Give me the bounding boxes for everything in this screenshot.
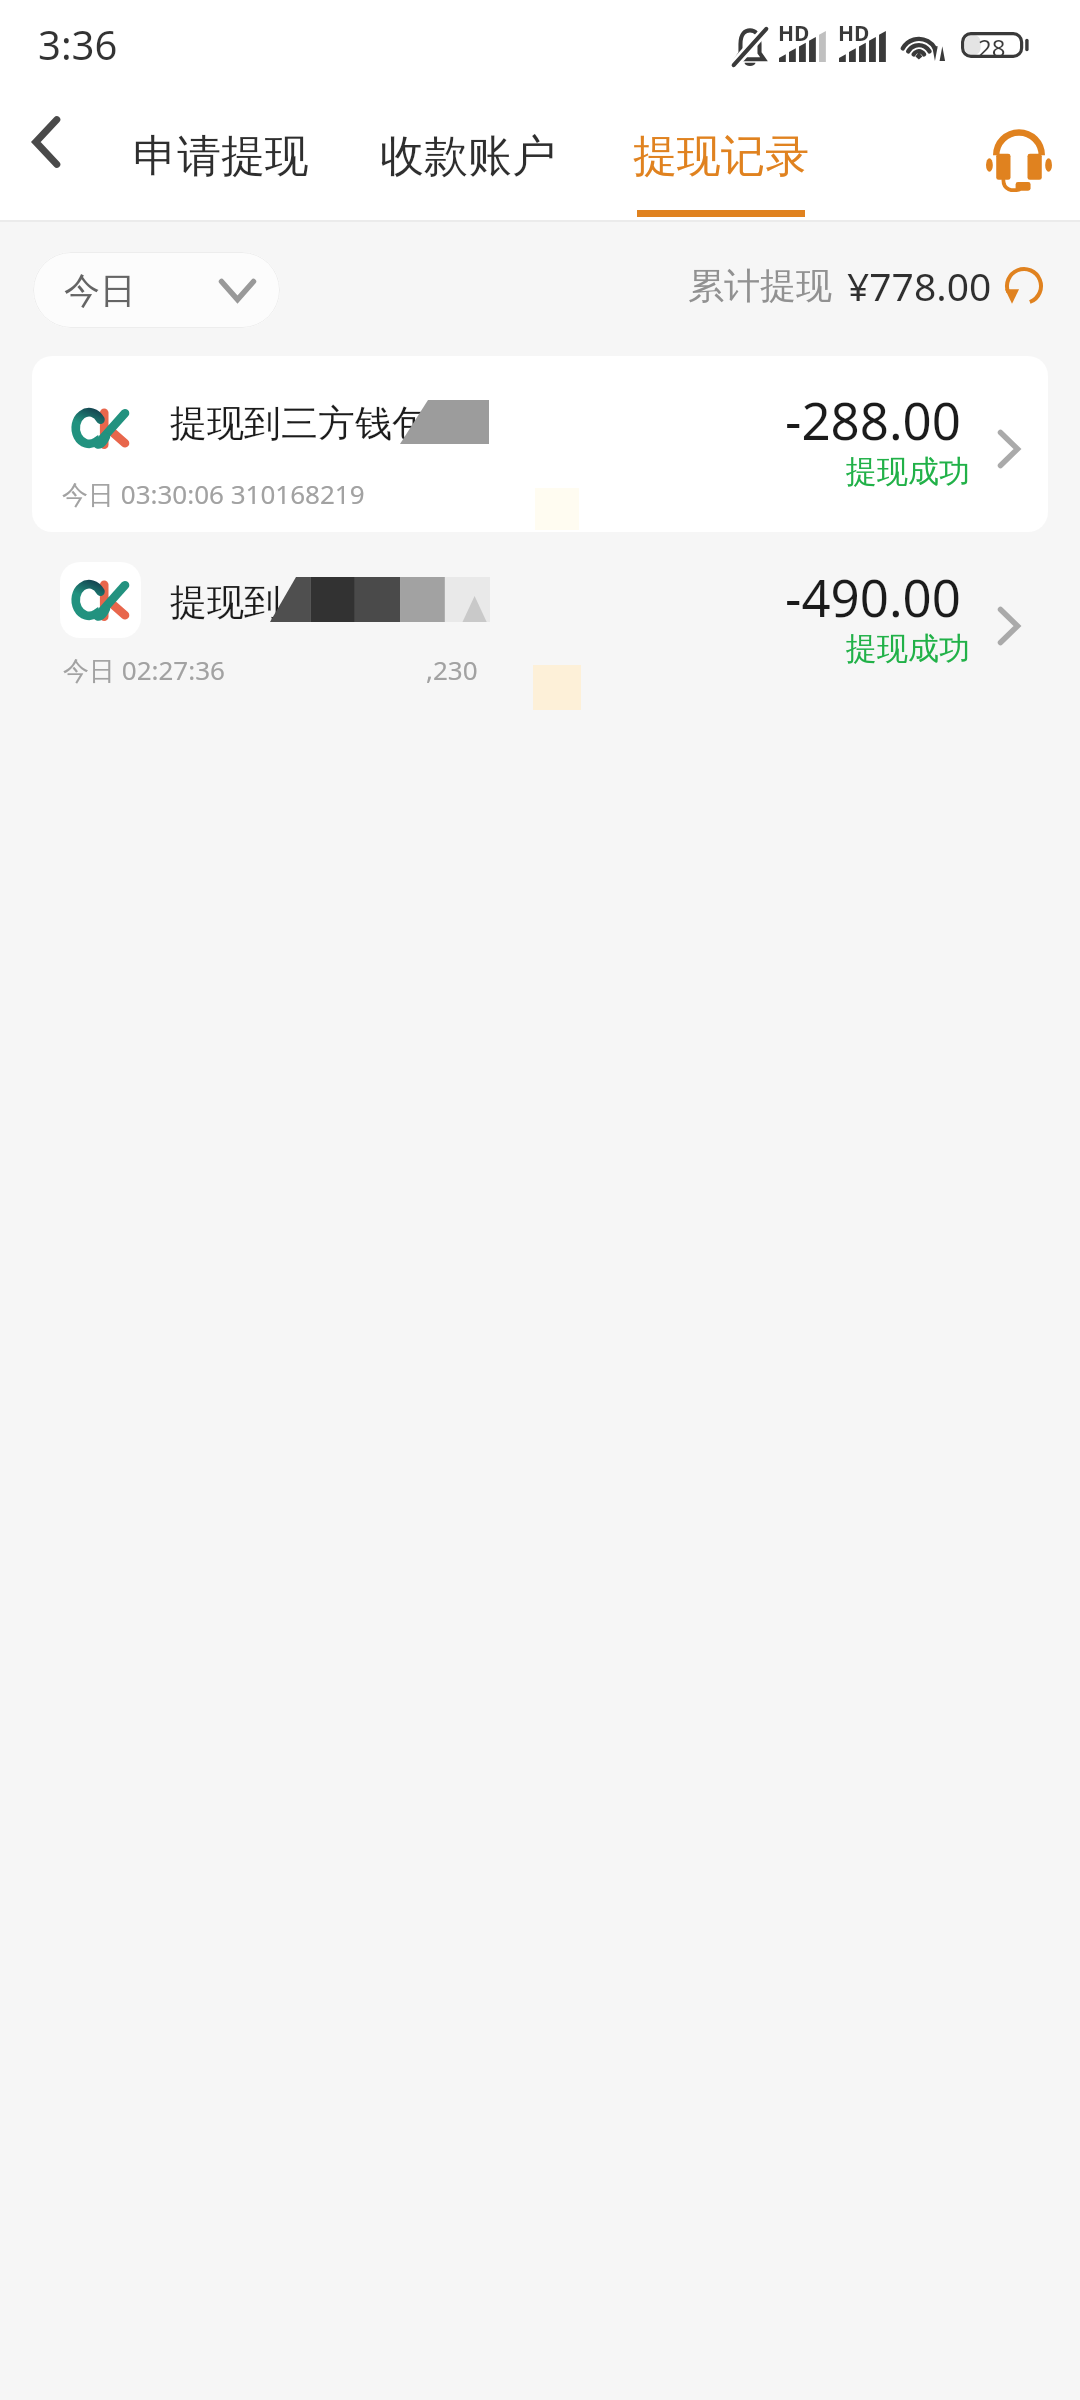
staticText: 提现记录 xyxy=(633,129,809,184)
button[interactable]: 申请提现 xyxy=(133,108,309,220)
button[interactable]: 提现到 xyxy=(32,548,1048,722)
button[interactable]: 提现到三方钱包 xyxy=(32,356,1048,532)
staticText: 申请提现 xyxy=(133,129,309,184)
staticText: 提现到 xyxy=(170,579,281,626)
staticText: HD xyxy=(778,19,810,48)
staticText: -490.00 xyxy=(785,562,961,631)
staticText: 今日 02:27:36 xyxy=(63,652,225,688)
button[interactable]: Refresh xyxy=(1001,263,1047,309)
staticText: 28 xyxy=(978,31,1006,57)
staticText: 提现成功 xyxy=(846,452,970,491)
staticText: 3:36 xyxy=(38,17,118,71)
button[interactable]: 收款账户 xyxy=(380,108,556,220)
staticText: ,230 xyxy=(426,652,478,687)
staticText: 今日 03:30:06 310168219 xyxy=(62,476,365,512)
button[interactable]: Customer service xyxy=(980,121,1058,199)
staticText: 今日 xyxy=(64,268,136,313)
staticText: 收款账户 xyxy=(380,129,556,184)
staticText: -288.00 xyxy=(785,385,961,454)
staticText: HD xyxy=(838,19,870,48)
staticText: ¥778.00 xyxy=(847,259,992,312)
button[interactable]: 今日 xyxy=(33,252,280,328)
button[interactable]: Back xyxy=(8,104,84,180)
staticText: 提现成功 xyxy=(846,629,970,668)
staticText: 累计提现 xyxy=(688,263,832,308)
button[interactable]: 提现记录 xyxy=(633,108,809,220)
staticText: 提现到三方钱包 xyxy=(170,400,429,447)
